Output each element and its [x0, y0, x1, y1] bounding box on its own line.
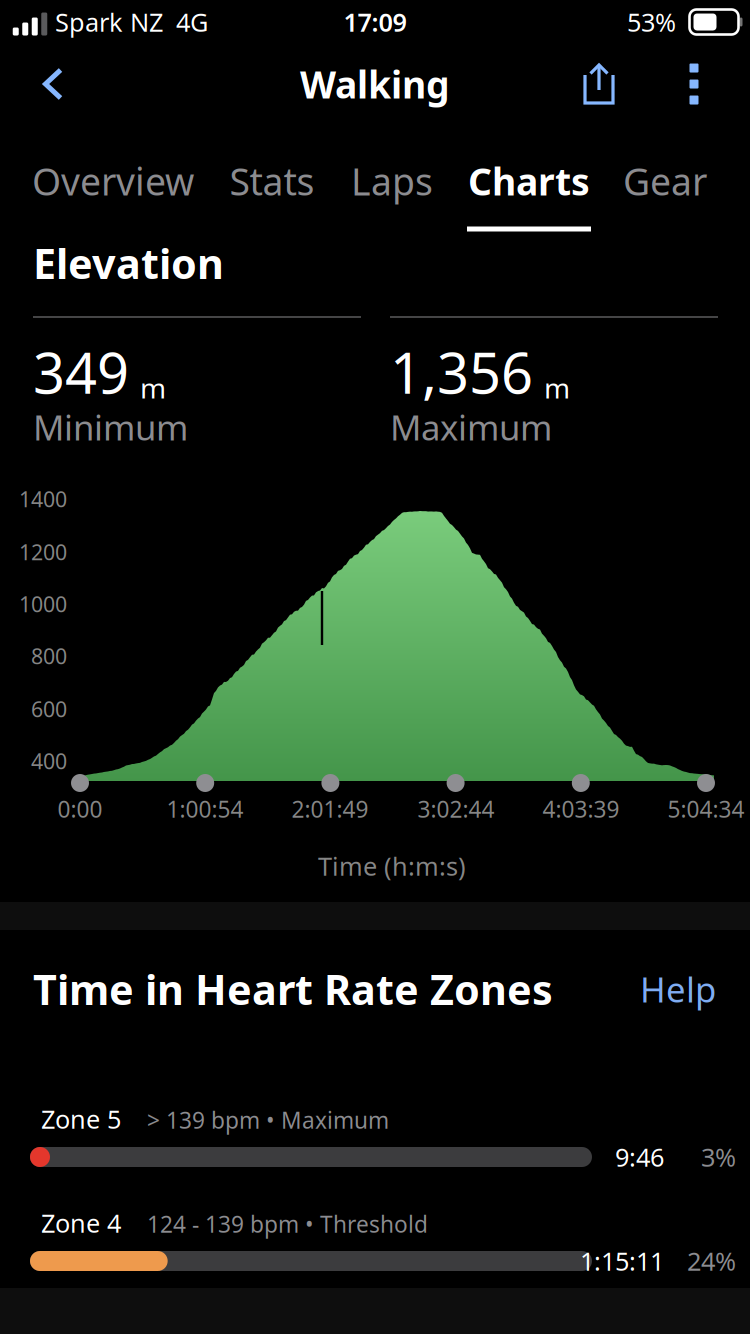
staticText: Spark NZ [55, 5, 163, 39]
staticText: 17:09 [343, 5, 406, 39]
button[interactable]: Share [565, 50, 633, 118]
staticText: 2:01:49 [291, 794, 368, 824]
staticText: 53% [627, 5, 676, 39]
staticText: 1,356 [390, 335, 533, 409]
button[interactable]: Stats [209, 132, 335, 236]
staticText: Help [640, 966, 716, 1012]
staticText: Elevation [33, 236, 224, 290]
staticText: 1200 [19, 538, 67, 566]
staticText: Charts [468, 156, 590, 206]
staticText: 1000 [19, 590, 67, 618]
staticText: Maximum [390, 404, 552, 450]
staticText: Walking [300, 59, 450, 109]
staticText: Zone 5 [41, 1102, 121, 1136]
button[interactable]: Gear [604, 132, 726, 236]
staticText: 4:03:39 [542, 794, 619, 824]
staticText: 24% [687, 1244, 736, 1278]
staticText: 9:46 [615, 1140, 664, 1174]
staticText: m [140, 369, 166, 406]
button[interactable]: Charts [449, 132, 609, 236]
button[interactable]: Overview [13, 132, 212, 236]
staticText: 3% [701, 1140, 736, 1174]
staticText: Time in Heart Rate Zones [33, 962, 553, 1016]
staticText: m [544, 369, 570, 406]
staticText: 3:02:44 [417, 794, 494, 824]
staticText: Time (h:m:s) [318, 849, 466, 883]
staticText: Zone 4 [41, 1206, 121, 1240]
staticText: > 139 bpm • Maximum [147, 1105, 389, 1135]
staticText: 5:04:34 [667, 794, 744, 824]
staticText: Laps [351, 156, 433, 206]
staticText: 1:15:11 [580, 1244, 664, 1278]
staticText: Overview [32, 156, 194, 206]
staticText: Gear [623, 156, 707, 206]
staticText: 1400 [19, 485, 67, 513]
staticText: Minimum [33, 404, 188, 450]
button[interactable]: Back [17, 50, 89, 118]
staticText: 800 [31, 642, 67, 670]
staticText: 600 [31, 695, 67, 723]
button[interactable]: More options [662, 50, 726, 118]
staticText: 400 [31, 747, 67, 775]
staticText: 0:00 [57, 794, 102, 824]
button[interactable]: Laps [332, 132, 451, 236]
staticText: 4G [176, 5, 208, 39]
button[interactable]: Help [623, 960, 733, 1018]
staticText: 349 [33, 335, 129, 409]
staticText: 1:00:54 [166, 794, 243, 824]
staticText: 124 - 139 bpm • Threshold [147, 1209, 428, 1239]
staticText: Stats [229, 156, 314, 206]
